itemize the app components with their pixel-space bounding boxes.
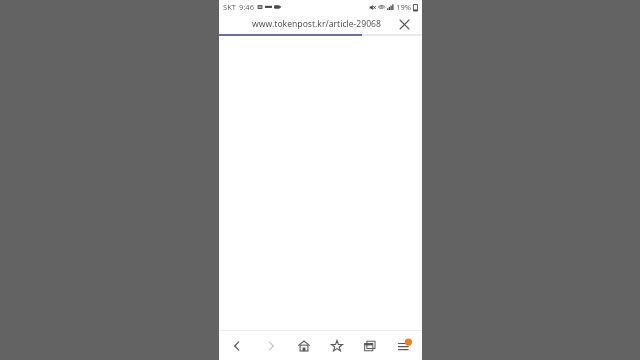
button[interactable]: Close: [396, 16, 412, 32]
button[interactable]: Back: [222, 331, 252, 360]
button[interactable]: www.tokenpost.kr/article-29068: [239, 18, 394, 30]
button[interactable]: Home: [289, 331, 319, 360]
button[interactable]: Forward: [256, 331, 286, 360]
staticText: SKT: [223, 2, 236, 12]
button[interactable]: Menu: [389, 331, 419, 360]
staticText: 9:46: [239, 2, 254, 12]
staticText: www.tokenpost.kr/article-29068: [252, 18, 381, 30]
button[interactable]: Tabs: [355, 331, 385, 360]
staticText: 19%: [396, 2, 411, 12]
button[interactable]: Bookmarks: [322, 331, 352, 360]
